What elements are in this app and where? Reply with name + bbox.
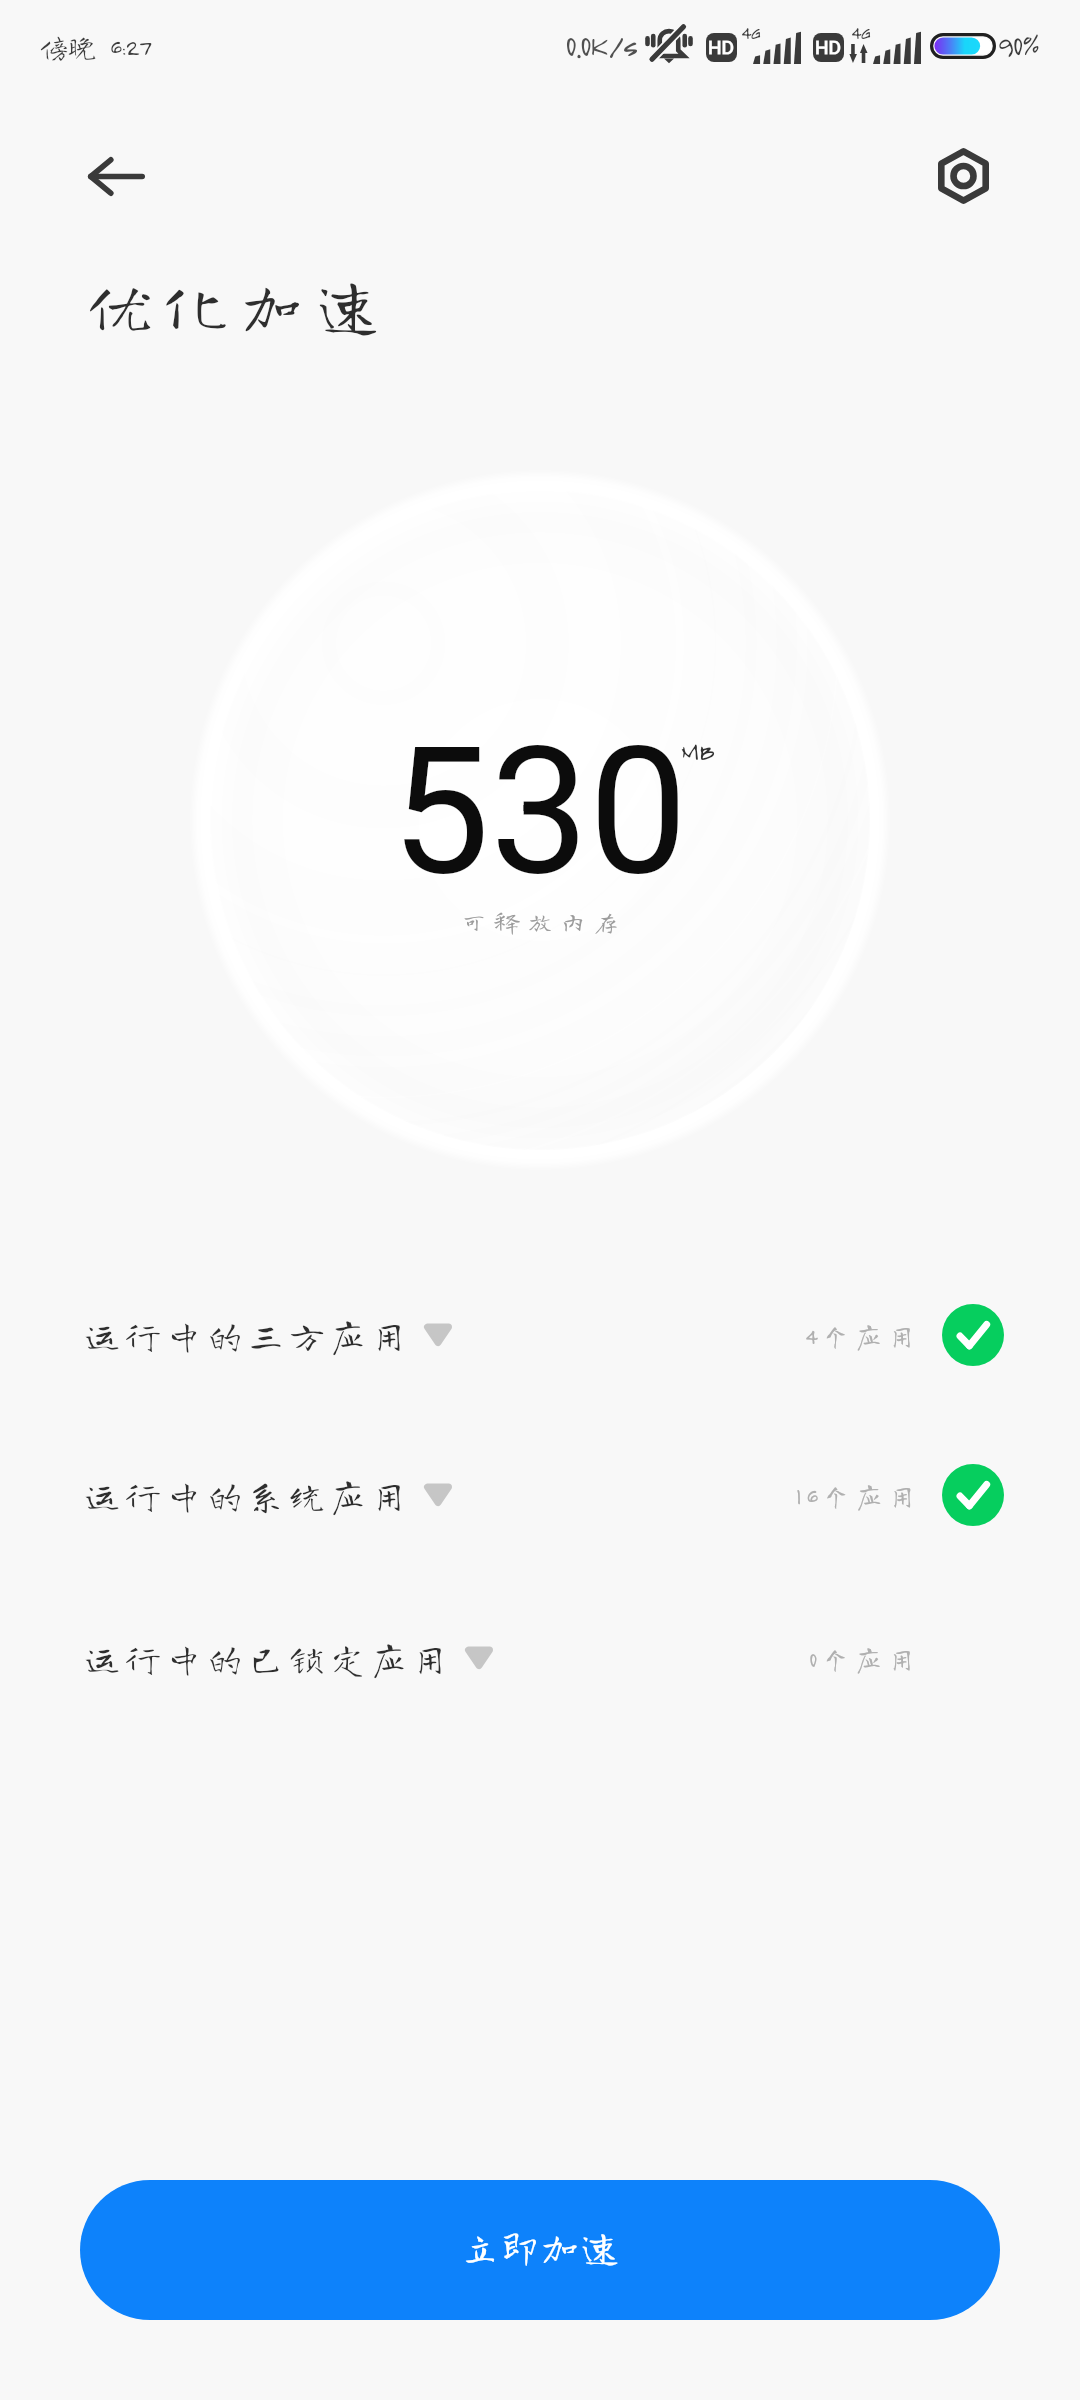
button[interactable]: 运行中的已锁定应用 xyxy=(0,1626,1080,1690)
staticText: 可释放内存 xyxy=(462,910,627,934)
staticText: 0.0K/s xyxy=(565,25,637,64)
staticText: 530 xyxy=(391,709,688,915)
button[interactable]: 运行中的系统应用 xyxy=(0,1463,1080,1527)
button[interactable]: 运行中的三方应用 xyxy=(0,1303,1080,1367)
staticText: HD xyxy=(815,36,842,58)
staticText: 运行中的系统应用 xyxy=(84,1477,413,1513)
staticText: 运行中的三方应用 xyxy=(84,1317,413,1353)
staticText: 4G xyxy=(851,22,871,44)
staticText: 4个应用 xyxy=(805,1322,922,1349)
button[interactable]: 立即加速 xyxy=(80,2180,1000,2320)
staticText: 16个应用 xyxy=(796,1482,922,1509)
staticText: HD xyxy=(708,36,735,58)
button[interactable]: Back xyxy=(72,132,160,220)
staticText: 傍晚 6:27 xyxy=(40,32,151,60)
staticText: 优化加速 xyxy=(89,273,394,335)
staticText: MB xyxy=(680,735,715,766)
button[interactable]: Settings xyxy=(919,132,1007,220)
staticText: 4G xyxy=(741,22,761,44)
staticText: 0个应用 xyxy=(809,1645,922,1672)
staticText: 运行中的已锁定应用 xyxy=(84,1640,454,1676)
staticText: 90% xyxy=(997,27,1039,62)
staticText: 立即加速 xyxy=(461,2228,622,2266)
